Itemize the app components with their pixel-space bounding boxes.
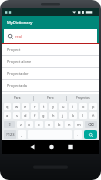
staticText: p — [92, 104, 95, 109]
button[interactable]: z — [17, 121, 24, 128]
staticText: Proyectos — [76, 96, 90, 100]
button[interactable]: e — [22, 103, 29, 110]
button[interactable]: y — [49, 103, 57, 110]
button[interactable]: u — [59, 103, 67, 110]
staticText: n — [68, 122, 71, 127]
button[interactable]: Pero — [34, 94, 66, 102]
button[interactable]: , — [18, 130, 26, 139]
staticText: w — [15, 104, 19, 109]
staticText: y — [52, 104, 55, 109]
staticText: c — [38, 122, 40, 127]
staticText: ?123 — [6, 132, 15, 137]
button[interactable]: d — [22, 112, 29, 119]
staticText: t — [43, 104, 45, 109]
button[interactable]: . — [74, 130, 82, 139]
staticText: Proyectada — [7, 83, 27, 88]
button[interactable]: p — [89, 103, 97, 110]
staticText: Pero — [47, 96, 54, 100]
button[interactable]: f — [31, 112, 38, 119]
button[interactable]: b — [55, 121, 63, 128]
button[interactable]: g — [40, 112, 47, 119]
staticText: b — [58, 122, 61, 127]
staticText: Proyect alone — [7, 59, 32, 64]
staticText: Proyectador — [7, 71, 29, 76]
button[interactable]: Proyectador — [2, 68, 99, 79]
button[interactable] — [2, 140, 35, 154]
staticText: o — [82, 104, 85, 109]
staticText: a — [6, 113, 9, 118]
button[interactable]: x — [26, 121, 33, 128]
staticText: q — [6, 104, 9, 109]
button[interactable]: o — [79, 103, 87, 110]
button[interactable]: r — [31, 103, 38, 110]
button[interactable]: Proyect — [2, 44, 99, 55]
button[interactable]: ?123 — [4, 130, 16, 139]
button[interactable]: ⌫ — [85, 121, 97, 128]
button[interactable]: n — [65, 121, 73, 128]
button[interactable]: Para — [2, 94, 33, 102]
staticText: u — [62, 104, 65, 109]
button[interactable]: v — [45, 121, 53, 128]
button[interactable]: k — [69, 112, 77, 119]
staticText: v — [48, 122, 51, 127]
button[interactable]: m — [75, 121, 83, 128]
staticText: real — [15, 34, 22, 39]
button[interactable]: l — [79, 112, 87, 119]
staticText: , — [21, 132, 23, 137]
staticText: s — [16, 113, 18, 118]
staticText: k — [72, 113, 75, 118]
button[interactable] — [67, 140, 99, 154]
button[interactable]: t — [40, 103, 47, 110]
staticText: ⌫ — [88, 122, 94, 127]
staticText: r — [34, 104, 36, 109]
staticText: z — [20, 122, 22, 127]
staticText: g — [42, 113, 45, 118]
staticText: x — [28, 122, 31, 127]
button[interactable]: real — [4, 29, 97, 43]
staticText: d — [24, 113, 27, 118]
button[interactable]: a — [4, 112, 11, 119]
staticText: l — [82, 113, 84, 118]
button[interactable]: j — [59, 112, 67, 119]
button[interactable] — [84, 130, 97, 139]
staticText: ñ — [92, 113, 95, 118]
button[interactable]: Proyectos — [67, 94, 99, 102]
staticText: Proyect — [7, 47, 21, 52]
staticText: i — [72, 104, 74, 109]
button[interactable]: ñ — [89, 112, 97, 119]
staticText: . — [77, 132, 79, 137]
button[interactable]: s — [13, 112, 20, 119]
button[interactable]: h — [49, 112, 57, 119]
button[interactable]: ⇧ — [4, 121, 15, 128]
staticText: e — [24, 104, 27, 109]
staticText: f — [34, 113, 36, 118]
staticText: MyDictionary — [7, 20, 33, 26]
button[interactable] — [35, 140, 67, 154]
button[interactable]: i — [69, 103, 77, 110]
staticText: h — [52, 113, 55, 118]
staticText: m — [77, 122, 81, 127]
staticText: j — [62, 113, 64, 118]
button[interactable]: w — [13, 103, 20, 110]
button[interactable]: Proyectada — [2, 80, 99, 91]
button[interactable]: c — [35, 121, 43, 128]
button[interactable]: q — [4, 103, 11, 110]
staticText: ⇧ — [8, 122, 12, 127]
staticText: Para — [14, 96, 21, 100]
button[interactable]: Proyect alone — [2, 56, 99, 67]
